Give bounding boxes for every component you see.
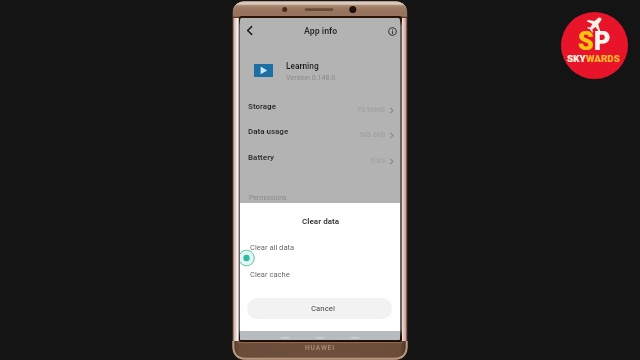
staticText: P <box>594 27 611 56</box>
button[interactable]: App details <box>382 21 400 41</box>
staticText: Clear cache <box>250 270 290 279</box>
staticText: 563.6KB <box>359 131 386 139</box>
staticText: 73.96MB <box>357 106 386 114</box>
staticText: Clear all data <box>250 243 295 252</box>
button[interactable]: Learning <box>240 58 400 90</box>
staticText: 0.0% <box>371 157 386 165</box>
button[interactable]: SP Skywards logo <box>561 12 628 79</box>
staticText: Learning <box>286 61 319 71</box>
staticText: Storage <box>248 102 277 111</box>
button[interactable]: Storage <box>240 96 400 121</box>
staticText: HUAWEI <box>305 344 335 352</box>
button[interactable]: Cancel <box>247 298 392 319</box>
button[interactable]: Clear cache <box>240 265 400 285</box>
staticText: Clear data <box>302 216 340 225</box>
staticText: Permissions <box>249 194 287 202</box>
staticText: WARDS <box>586 53 620 64</box>
staticText: App info <box>304 26 338 36</box>
staticText: S <box>578 27 594 56</box>
button[interactable]: Clear all data <box>240 239 400 259</box>
staticText: Data usage <box>248 127 289 136</box>
staticText: SKY <box>567 53 586 64</box>
staticText: Battery <box>248 153 275 162</box>
staticText: Version 0.148.0 <box>286 73 336 81</box>
staticText: Cancel <box>311 304 335 313</box>
button[interactable]: Battery <box>240 147 400 172</box>
button[interactable]: Back <box>240 20 260 41</box>
button[interactable]: Data usage <box>240 121 400 146</box>
